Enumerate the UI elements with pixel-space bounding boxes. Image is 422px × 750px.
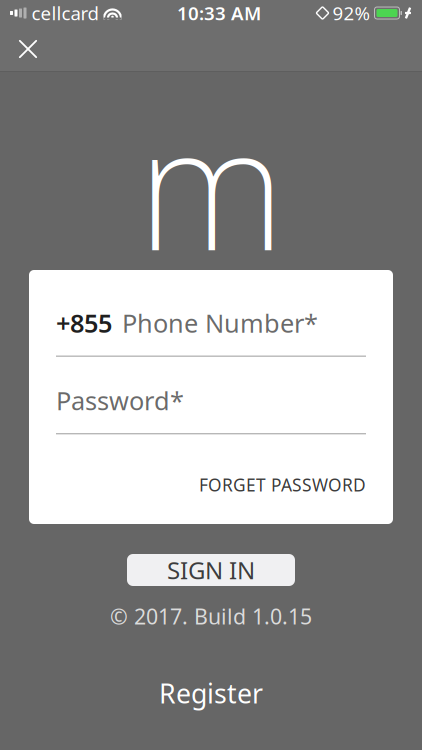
button[interactable]: FORGET PASSWORD xyxy=(199,467,366,502)
staticText: © 2017. Build 1.0.15 xyxy=(110,602,312,630)
staticText: FORGET PASSWORD xyxy=(199,473,366,496)
button[interactable]: Register xyxy=(135,667,287,719)
staticText: Phone Number* xyxy=(122,306,318,340)
staticText: 10:33 AM xyxy=(177,1,261,25)
staticText: Password* xyxy=(56,384,184,417)
staticText: Register xyxy=(159,675,263,711)
staticText: SIGN IN xyxy=(167,554,255,586)
staticText: +855 xyxy=(56,306,112,340)
button[interactable]: Close xyxy=(0,26,51,72)
button[interactable]: SIGN IN xyxy=(127,554,295,586)
staticText: cellcard xyxy=(31,1,98,25)
staticText: m xyxy=(137,71,285,297)
staticText: 92% xyxy=(332,1,370,25)
